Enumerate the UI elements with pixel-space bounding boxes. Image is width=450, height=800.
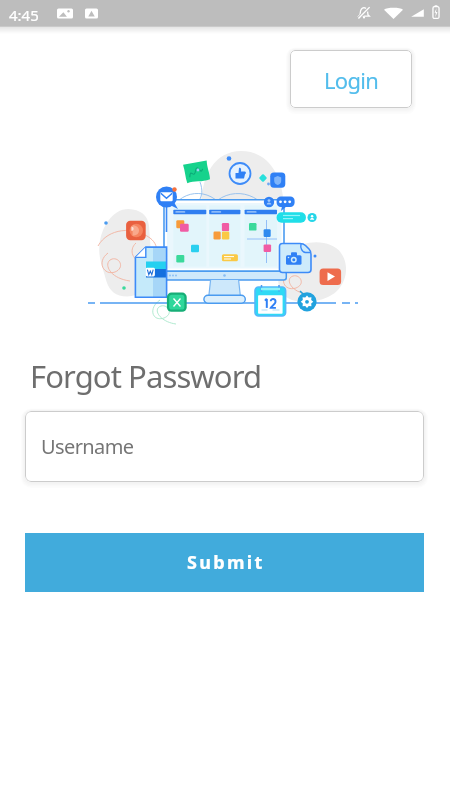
staticText: 4:45 [9, 5, 39, 25]
staticText: Username [41, 433, 134, 460]
staticText: Login [324, 65, 379, 95]
staticText: Forgot Password [30, 355, 262, 397]
button[interactable]: Submit [25, 533, 424, 592]
button[interactable]: Username [25, 411, 424, 482]
staticText: Submit [187, 550, 265, 575]
button[interactable]: Login [290, 50, 412, 108]
